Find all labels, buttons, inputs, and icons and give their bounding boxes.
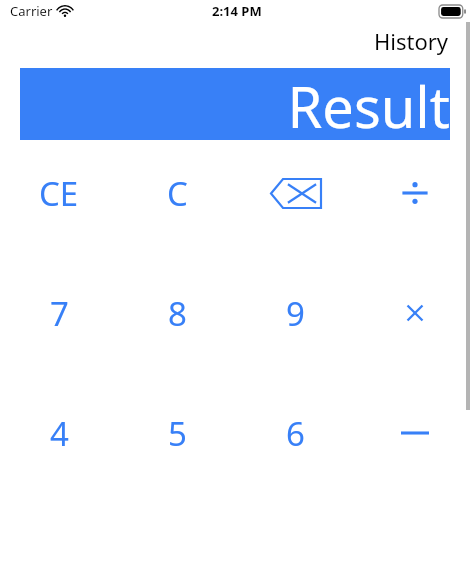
staticText: 7 xyxy=(50,291,69,336)
button[interactable] xyxy=(355,169,474,217)
button[interactable]: 4 xyxy=(0,409,118,457)
button[interactable]: Result xyxy=(20,68,450,140)
button[interactable]: Backspace xyxy=(236,169,355,217)
staticText: 5 xyxy=(168,411,187,456)
button[interactable]: History xyxy=(374,26,449,56)
button[interactable] xyxy=(355,289,474,337)
staticText: 2:14 PM xyxy=(212,2,262,20)
staticText: C xyxy=(167,171,188,216)
button[interactable]: 6 xyxy=(236,409,355,457)
staticText: Result xyxy=(287,68,450,140)
button[interactable]: 9 xyxy=(236,289,355,337)
staticText: 4 xyxy=(50,411,69,456)
staticText: Carrier xyxy=(10,2,53,20)
button[interactable]: 8 xyxy=(118,289,236,337)
staticText: CE xyxy=(39,171,79,216)
staticText: 9 xyxy=(286,291,305,336)
button[interactable]: C xyxy=(118,169,236,217)
button[interactable]: 7 xyxy=(0,289,118,337)
staticText: 6 xyxy=(286,411,305,456)
staticText: History xyxy=(374,26,449,56)
button[interactable]: CE xyxy=(0,169,118,217)
staticText: 8 xyxy=(168,291,187,336)
button[interactable]: 5 xyxy=(118,409,236,457)
button[interactable] xyxy=(355,409,474,457)
